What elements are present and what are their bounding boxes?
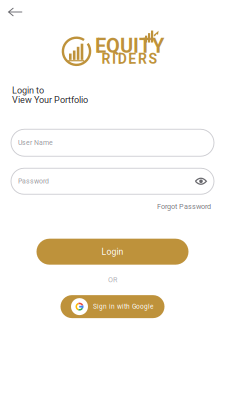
staticText: RIDERS [101, 51, 157, 67]
staticText: EQUITY [95, 34, 164, 58]
button[interactable]: Sign in with Google [60, 295, 164, 318]
staticText: Sign in with Google [93, 303, 153, 310]
staticText: Forgot Password [157, 202, 211, 211]
staticText: Login [101, 247, 123, 257]
staticText: Password [18, 177, 49, 185]
staticText: User Name [18, 139, 53, 147]
button[interactable]: Forgot Password [157, 202, 211, 211]
staticText: Login to [12, 85, 44, 96]
button[interactable]: Login [36, 239, 188, 265]
button[interactable]: Back [4, 5, 27, 19]
staticText: View Your Portfolio [12, 95, 88, 105]
staticText: OR [108, 276, 117, 284]
button[interactable]: Show password [193, 173, 209, 189]
